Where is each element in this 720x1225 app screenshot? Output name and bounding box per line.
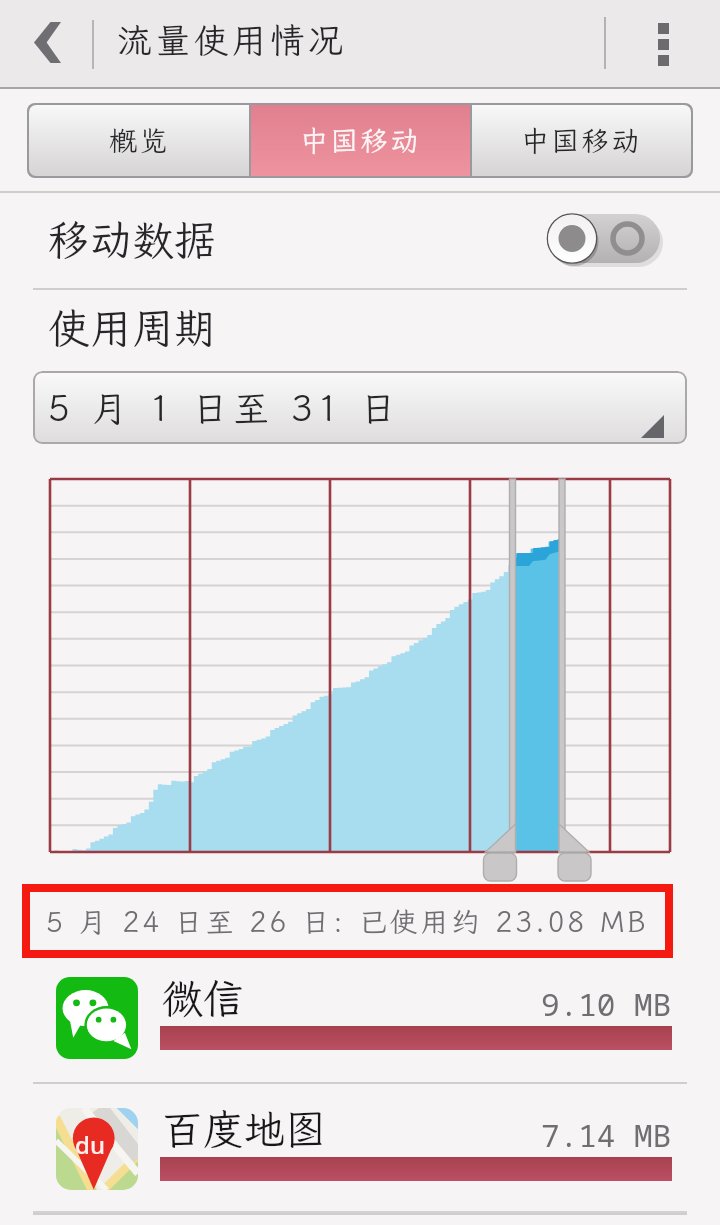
staticText: 中国移动	[521, 122, 642, 159]
button[interactable]: Mobile data toggle	[546, 210, 666, 268]
button[interactable]: 概览	[29, 105, 249, 176]
button[interactable]: Back	[0, 0, 92, 89]
staticText: 流量使用情况	[117, 17, 347, 63]
staticText: 7.14 MB	[541, 1114, 672, 1156]
staticText: 5 月 1 日至 31 日	[48, 384, 402, 431]
staticText: 中国移动	[300, 122, 421, 159]
button[interactable]: 微信	[0, 961, 720, 1083]
staticText: du	[75, 1128, 105, 1161]
staticText: 概览	[109, 122, 170, 159]
staticText: 移动数据	[48, 212, 217, 267]
staticText: 9.10 MB	[541, 983, 672, 1025]
staticText: 微信	[162, 971, 244, 1025]
staticText: 百度地图	[162, 1102, 326, 1156]
button[interactable]: 5 月 1 日至 31 日	[33, 371, 687, 444]
staticText: 5 月 24 日至 26 日: 已使用约 23.08 MB	[46, 903, 649, 940]
button[interactable]: 中国移动	[251, 105, 470, 176]
button[interactable]: More options	[620, 0, 706, 89]
button[interactable]: 中国移动	[472, 105, 691, 176]
button[interactable]: du	[0, 1092, 720, 1214]
staticText: 使用周期	[48, 300, 217, 355]
